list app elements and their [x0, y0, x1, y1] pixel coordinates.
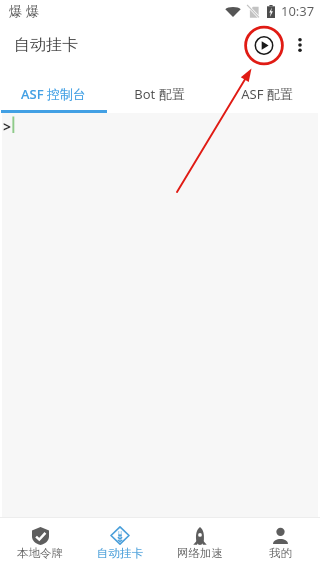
button[interactable]: Bot 配置: [106, 68, 213, 110]
staticText: 我的: [269, 546, 292, 560]
staticText: 爆 爆: [9, 2, 40, 20]
staticText: >: [3, 117, 12, 136]
button[interactable]: ASF 配置: [213, 68, 320, 110]
button[interactable]: ASF 控制台: [0, 68, 106, 110]
button[interactable]: 本地令牌: [0, 518, 80, 568]
staticText: 本地令牌: [17, 546, 63, 560]
button[interactable]: 我的: [240, 518, 320, 568]
staticText: 自动挂卡: [14, 35, 78, 55]
staticText: 网络加速: [177, 546, 223, 560]
button[interactable]: 自动挂卡: [80, 518, 160, 568]
staticText: ASF 控制台: [21, 85, 86, 103]
button[interactable]: Start: [246, 23, 281, 67]
staticText: 自动挂卡: [97, 546, 143, 560]
staticText: 10:37: [281, 2, 315, 20]
button[interactable]: More options: [281, 23, 319, 67]
button[interactable]: 网络加速: [160, 518, 240, 568]
staticText: ASF 配置: [241, 85, 293, 103]
staticText: Bot 配置: [134, 85, 185, 103]
